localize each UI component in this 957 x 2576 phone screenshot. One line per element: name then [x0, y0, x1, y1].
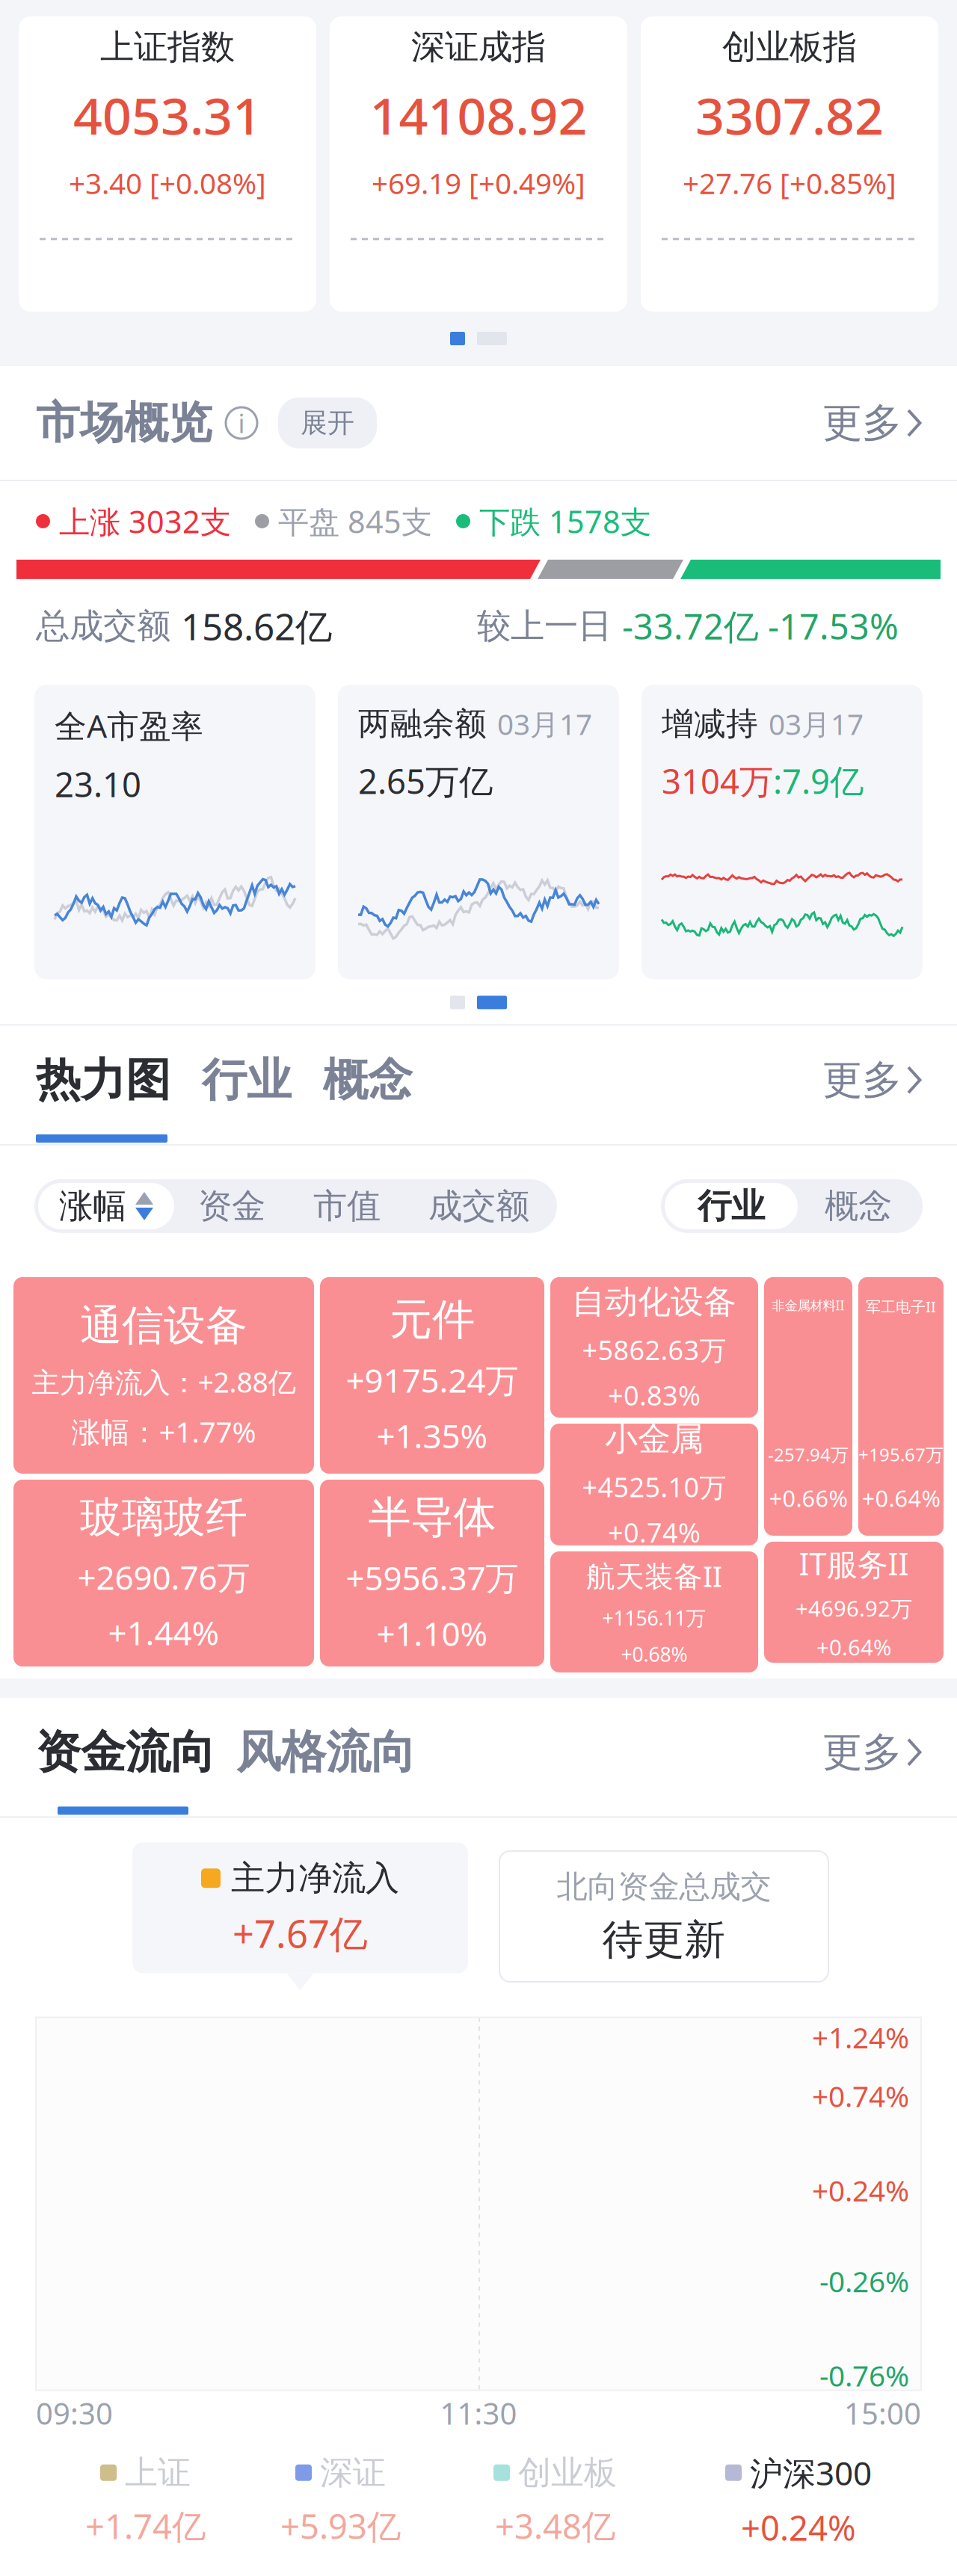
staticText: -0.26%: [819, 2262, 909, 2300]
button[interactable]: 增减持: [641, 685, 923, 979]
staticText: 上证: [125, 2452, 191, 2493]
button[interactable]: 市值: [289, 1183, 404, 1229]
staticText: 总成交额: [36, 605, 181, 647]
staticText: 较上一日: [477, 605, 622, 647]
button[interactable]: 上证指数: [19, 16, 316, 312]
staticText: 深证成指: [411, 26, 546, 68]
staticText: 下跌 1578支: [479, 501, 651, 542]
staticText: +0.74%: [812, 2077, 909, 2115]
staticText: +3.40 [+0.08%]: [69, 164, 266, 202]
staticText: 更多: [822, 398, 902, 447]
staticText: 沪深300: [750, 2451, 872, 2494]
staticText: +1.35%: [376, 1414, 488, 1457]
button[interactable]: 航天装备II: [550, 1551, 758, 1672]
button[interactable]: 军工电子II: [858, 1277, 944, 1536]
button[interactable]: 行业: [202, 1048, 323, 1112]
staticText: 2.65万亿: [358, 758, 493, 803]
staticText: +27.76 [+0.85%]: [683, 164, 896, 202]
staticText: +1.44%: [108, 1611, 219, 1654]
button[interactable]: 半导体: [320, 1480, 544, 1666]
staticText: +0.66%: [769, 1483, 847, 1513]
staticText: +1.74亿: [85, 2503, 206, 2548]
staticText: i: [238, 406, 245, 440]
staticText: 热力图: [36, 1052, 170, 1108]
staticText: +0.64%: [816, 1633, 891, 1662]
button[interactable]: 更多: [822, 1719, 921, 1786]
button[interactable]: 上证: [85, 2452, 206, 2548]
staticText: 14108.92: [370, 81, 587, 149]
staticText: 主力净流入：+2.88亿: [32, 1363, 296, 1400]
staticText: 更多: [822, 1728, 902, 1777]
staticText: +3.48亿: [495, 2503, 615, 2548]
staticText: 09:30: [36, 2393, 113, 2433]
button[interactable]: 两融余额: [338, 685, 619, 979]
button[interactable]: 展开: [278, 397, 377, 448]
button[interactable]: 通信设备: [13, 1277, 314, 1474]
staticText: 两融余额: [358, 704, 487, 743]
staticText: +0.24%: [741, 2505, 856, 2550]
button[interactable]: 沪深300: [725, 2451, 872, 2550]
staticText: 创业板指: [722, 26, 857, 68]
staticText: 涨幅: [59, 1185, 126, 1227]
button[interactable]: 资金流向: [36, 1720, 236, 1784]
staticText: 成交额: [428, 1185, 529, 1227]
staticText: +5.93亿: [280, 2503, 401, 2548]
staticText: :7.9亿: [773, 758, 864, 803]
button[interactable]: 全A市盈率: [34, 685, 316, 979]
staticText: 航天装备II: [586, 1557, 722, 1595]
staticText: 市场概览: [36, 396, 212, 450]
button[interactable]: 更多: [822, 1047, 921, 1113]
staticText: +2690.76万: [77, 1555, 250, 1599]
button[interactable]: IT服务II: [764, 1542, 944, 1663]
staticText: 风格流向: [236, 1725, 416, 1780]
staticText: +195.67万: [858, 1443, 944, 1466]
staticText: 小金属: [605, 1419, 704, 1459]
button[interactable]: 创业板: [493, 2452, 617, 2548]
button[interactable]: 深证成指: [330, 16, 627, 312]
staticText: 通信设备: [80, 1300, 247, 1351]
staticText: +0.64%: [862, 1483, 940, 1513]
button[interactable]: 资金: [174, 1183, 289, 1229]
staticText: +69.19 [+0.49%]: [372, 164, 585, 202]
button[interactable]: 成交额: [404, 1183, 553, 1229]
staticText: 增减持: [662, 704, 758, 743]
button[interactable]: 风格流向: [236, 1720, 416, 1784]
staticText: 深证: [320, 2452, 386, 2493]
staticText: +0.83%: [608, 1377, 701, 1413]
staticText: -0.76%: [819, 2356, 909, 2394]
staticText: 15:00: [844, 2393, 921, 2433]
button[interactable]: 自动化设备: [550, 1277, 758, 1418]
staticText: 行业: [698, 1185, 765, 1227]
staticText: +1.10%: [376, 1611, 488, 1655]
staticText: 主力净流入: [231, 1857, 399, 1899]
button[interactable]: 深证: [280, 2452, 401, 2548]
staticText: 玻璃玻纤: [80, 1492, 247, 1543]
staticText: 北向资金总成交: [557, 1868, 771, 1906]
button[interactable]: 说明: [226, 406, 257, 440]
staticText: +0.74%: [608, 1514, 701, 1550]
button[interactable]: 更多: [822, 390, 921, 456]
staticText: 23.10: [55, 762, 141, 807]
staticText: 3307.82: [695, 81, 884, 149]
staticText: 展开: [301, 406, 354, 439]
button[interactable]: 玻璃玻纤: [13, 1480, 314, 1666]
button[interactable]: 小金属: [550, 1424, 758, 1545]
staticText: +1.24%: [812, 2018, 909, 2056]
button[interactable]: 概念: [798, 1183, 919, 1229]
button[interactable]: 概念: [323, 1048, 413, 1112]
staticText: 03月17: [769, 705, 864, 743]
staticText: 非金属材料II: [772, 1297, 844, 1314]
button[interactable]: 创业板指: [641, 16, 938, 312]
staticText: 元件: [390, 1293, 475, 1346]
staticText: 平盘 845支: [278, 501, 432, 542]
staticText: 全A市盈率: [55, 704, 203, 747]
button[interactable]: 行业: [665, 1183, 798, 1229]
staticText: 行业: [202, 1052, 292, 1108]
staticText: +0.68%: [621, 1641, 687, 1667]
button[interactable]: 热力图: [36, 1048, 202, 1112]
button[interactable]: 元件: [320, 1277, 544, 1474]
staticText: 3104万: [662, 758, 773, 803]
button[interactable]: 涨幅: [38, 1183, 174, 1229]
staticText: 军工电子II: [866, 1297, 936, 1316]
button[interactable]: 非金属材料II: [764, 1277, 852, 1536]
